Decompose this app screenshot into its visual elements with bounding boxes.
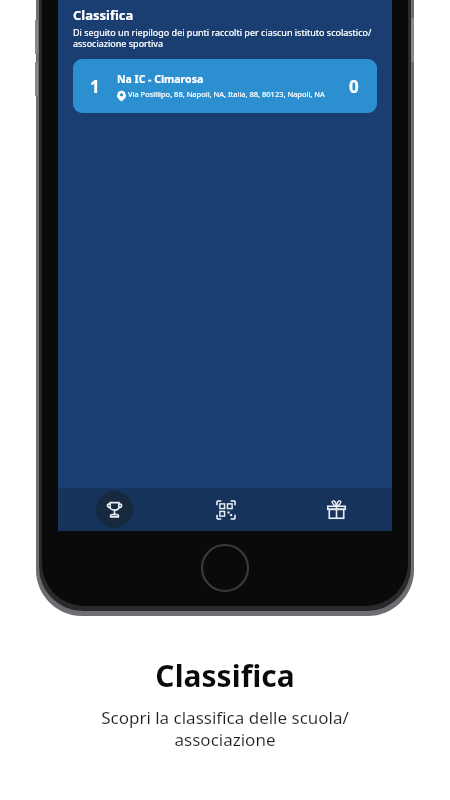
staticText: Classifica xyxy=(155,655,295,696)
staticText: Classifica xyxy=(73,6,134,24)
staticText: Scopri la classifica delle scuola/associ… xyxy=(95,706,355,751)
staticText: 1 xyxy=(90,75,100,98)
staticText: 0 xyxy=(349,75,359,98)
button[interactable]: Premi xyxy=(281,488,392,531)
button[interactable]: 1 xyxy=(73,59,377,113)
staticText: Via Posillipo, 88, Napoli, NA, Italia, 8… xyxy=(128,89,325,99)
button[interactable]: Scansiona QR xyxy=(170,488,281,531)
staticText: Na IC - Cimarosa xyxy=(117,72,204,86)
button[interactable]: Classifica xyxy=(58,488,170,531)
staticText: Di seguito un riepilogo dei punti raccol… xyxy=(73,26,380,49)
